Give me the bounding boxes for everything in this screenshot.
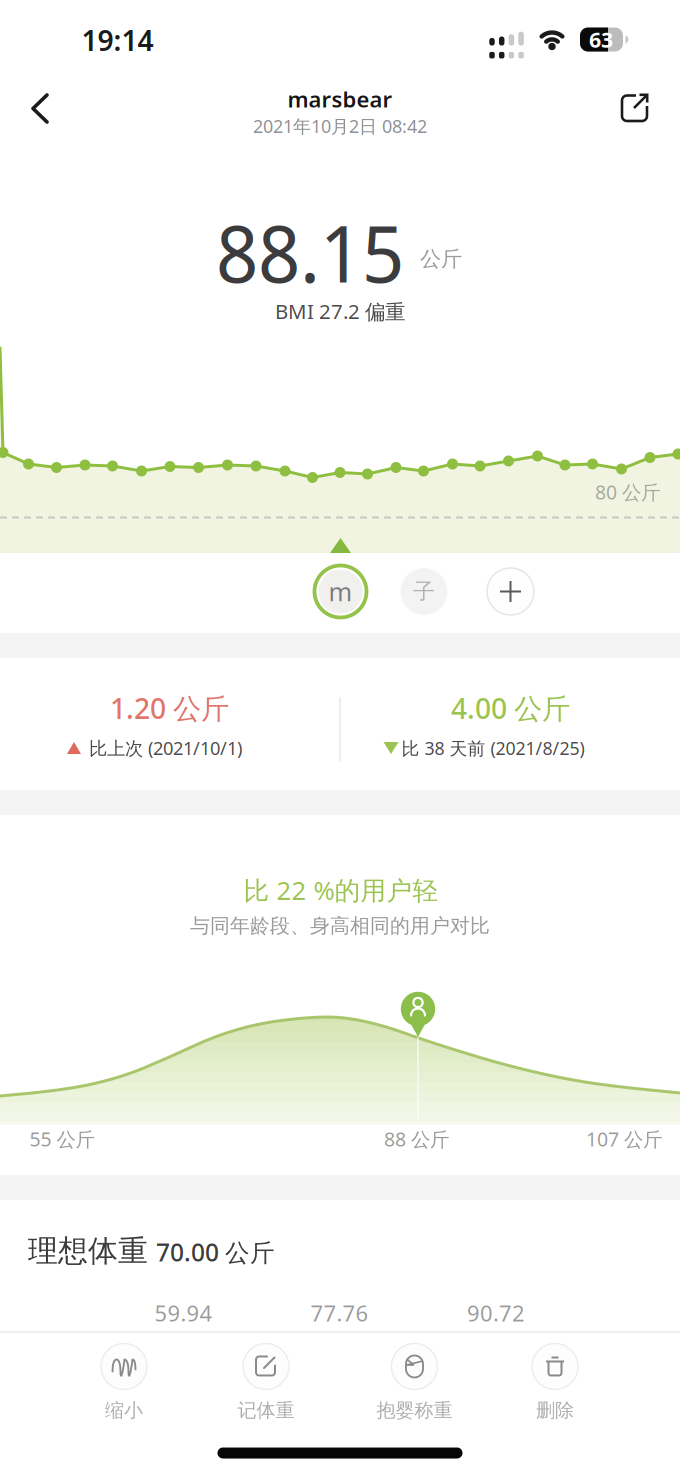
staticText: 4.00 公斤 bbox=[451, 689, 570, 727]
staticText: 理想体重 bbox=[28, 1232, 148, 1270]
staticText: 77.76 bbox=[310, 1298, 368, 1328]
button[interactable]: 添加成员 bbox=[483, 564, 537, 618]
button[interactable]: 删除 bbox=[532, 1343, 578, 1422]
staticText: 88 公斤 bbox=[384, 1126, 449, 1152]
button[interactable]: Back bbox=[25, 92, 59, 126]
staticText: 比上次 (2021/10/1) bbox=[89, 736, 242, 760]
staticText: 缩小 bbox=[105, 1398, 143, 1422]
button[interactable]: Share bbox=[618, 92, 652, 126]
staticText: 90.72 bbox=[467, 1298, 525, 1328]
staticText: 80 公斤 bbox=[595, 479, 660, 505]
staticText: 107 公斤 bbox=[586, 1126, 662, 1152]
staticText: BMI 27.2 偏重 bbox=[275, 297, 405, 325]
staticText: 1.20 公斤 bbox=[110, 689, 229, 727]
staticText: 19:14 bbox=[81, 21, 153, 59]
staticText: marsbear bbox=[287, 84, 392, 114]
staticText: 88.15 bbox=[216, 198, 404, 305]
button[interactable]: 成员 子 bbox=[397, 564, 451, 618]
staticText: 子 bbox=[413, 578, 435, 605]
button[interactable]: 抱婴称重 bbox=[376, 1343, 452, 1422]
staticText: 70.00 公斤 bbox=[156, 1235, 275, 1269]
staticText: 删除 bbox=[536, 1398, 574, 1422]
button[interactable]: 记体重 bbox=[237, 1343, 294, 1422]
staticText: 63 bbox=[589, 25, 613, 54]
staticText: 55 公斤 bbox=[29, 1126, 94, 1152]
staticText: m bbox=[328, 574, 352, 609]
staticText: 抱婴称重 bbox=[376, 1398, 452, 1422]
staticText: 记体重 bbox=[237, 1398, 294, 1422]
button[interactable]: 成员 m bbox=[313, 564, 367, 618]
button[interactable]: 缩小 bbox=[101, 1343, 147, 1422]
staticText: 59.94 bbox=[154, 1298, 212, 1328]
staticText: 与同年龄段、身高相同的用户对比 bbox=[190, 913, 490, 938]
staticText: 2021年10月2日 08:42 bbox=[253, 114, 427, 138]
staticText: 公斤 bbox=[420, 246, 462, 272]
staticText: 比 38 天前 (2021/8/25) bbox=[401, 736, 584, 760]
staticText: 比 22 %的用户轻 bbox=[243, 873, 438, 907]
